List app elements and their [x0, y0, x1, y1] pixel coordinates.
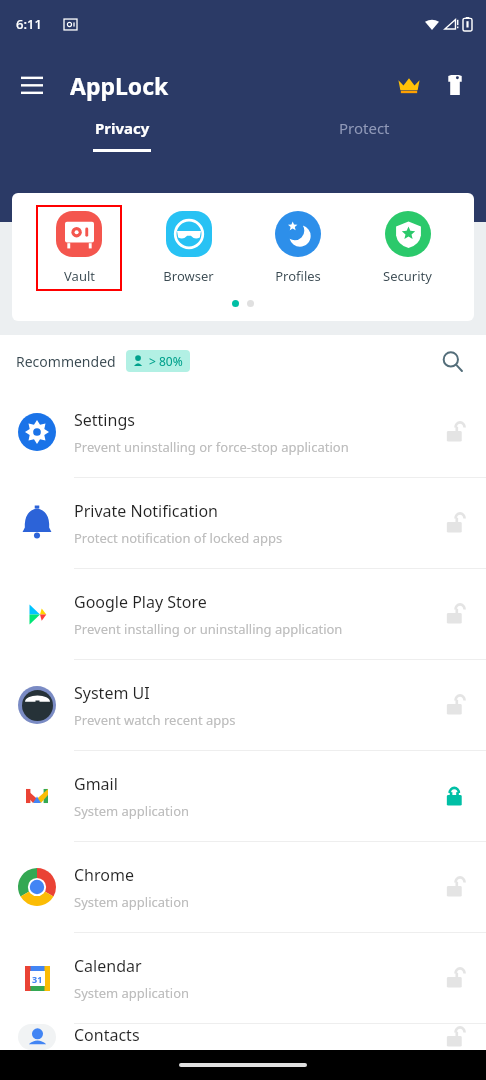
staticText: Calendar [74, 955, 142, 977]
button[interactable]: System UI [0, 660, 486, 750]
staticText: > 80% [149, 353, 183, 369]
button[interactable]: Profiles [255, 205, 341, 291]
staticText: 6:11 [16, 15, 42, 33]
staticText: AppLock [70, 70, 169, 101]
staticText: Prevent uninstalling or force-stop appli… [74, 438, 349, 456]
button[interactable]: Settings [0, 387, 486, 477]
button[interactable]: Protect [243, 118, 486, 170]
staticText: Profiles [275, 267, 321, 285]
staticText: Settings [74, 409, 135, 431]
button[interactable]: Gmail [0, 751, 486, 841]
button[interactable]: Premium [386, 62, 432, 108]
staticText: Vault [64, 267, 95, 285]
staticText: 31 [32, 973, 43, 985]
staticText: Privacy [95, 118, 150, 138]
button[interactable]: Contacts [0, 1024, 486, 1050]
staticText: Protect [339, 118, 390, 138]
staticText: Private Notification [74, 500, 218, 522]
button[interactable]: Google Play Store [0, 569, 486, 659]
staticText: System application [74, 984, 190, 1002]
staticText: System application [74, 802, 190, 820]
button[interactable]: Security [364, 205, 450, 291]
button[interactable]: Vault [36, 205, 122, 291]
staticText: Prevent installing or uninstalling appli… [74, 620, 343, 638]
button[interactable]: Privacy [0, 118, 243, 170]
button[interactable]: Open navigation menu [10, 63, 54, 107]
button[interactable]: Search [432, 341, 472, 381]
staticText: Browser [163, 267, 214, 285]
button[interactable]: Themes [432, 62, 478, 108]
staticText: Prevent watch recent apps [74, 711, 236, 729]
button[interactable]: 31 [0, 933, 486, 1023]
staticText: Google Play Store [74, 591, 207, 613]
staticText: Recommended [16, 352, 116, 371]
staticText: System application [74, 893, 190, 911]
staticText: System UI [74, 682, 150, 704]
button[interactable]: Chrome [0, 842, 486, 932]
staticText: Contacts [74, 1024, 140, 1046]
staticText: Protect notification of locked apps [74, 529, 283, 547]
staticText: Security [383, 267, 432, 285]
staticText: Gmail [74, 773, 118, 795]
button[interactable]: Browser [145, 205, 231, 291]
button[interactable]: Private Notification [0, 478, 486, 568]
staticText: Chrome [74, 864, 134, 886]
